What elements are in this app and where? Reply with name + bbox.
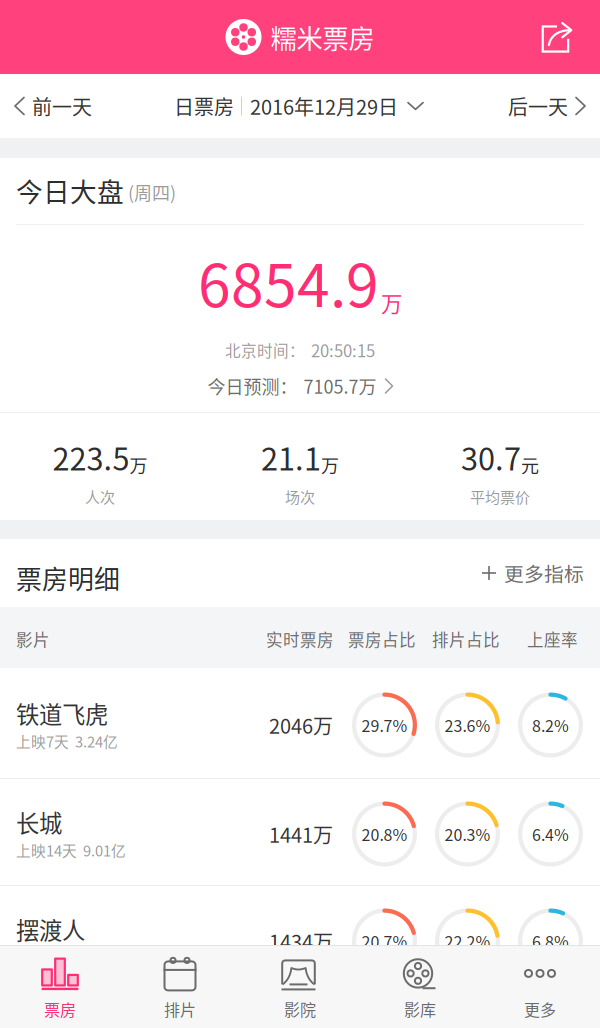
staticText: 排片	[164, 997, 196, 1021]
button[interactable]: 后一天	[450, 74, 600, 138]
staticText: 影片	[16, 627, 50, 651]
staticText: 排片占比	[432, 627, 500, 651]
button[interactable]: 票房	[0, 945, 120, 1028]
staticText: 2046万	[269, 710, 333, 739]
staticText: 票房明细	[16, 559, 120, 596]
staticText: 21.1	[261, 435, 321, 479]
staticText: 影院	[284, 997, 316, 1021]
staticText: 今日预测：	[207, 373, 297, 399]
staticText: 今日大盘	[16, 171, 124, 210]
staticText: 长城	[16, 805, 62, 839]
button[interactable]: 影库	[360, 945, 480, 1028]
staticText: 29.7%	[361, 713, 407, 737]
staticText: 20.7%	[361, 929, 407, 953]
staticText: 更多	[524, 997, 556, 1021]
button[interactable]: 前一天	[0, 74, 150, 138]
staticText: 影库	[404, 997, 436, 1021]
staticText: 万	[129, 452, 147, 478]
staticText: 6854.9	[198, 239, 379, 324]
staticText: 1434万	[269, 926, 333, 955]
staticText: 人次	[85, 485, 115, 507]
button[interactable]: 排片	[120, 945, 240, 1028]
staticText: 20.8%	[361, 822, 407, 846]
staticText: 2016年12月29日	[250, 91, 398, 120]
button[interactable]: 分享	[521, 0, 593, 74]
staticText: 6.4%	[532, 822, 569, 846]
staticText: 30.7	[461, 435, 521, 479]
staticText: 8.2%	[532, 713, 569, 737]
staticText: 7105.7万	[303, 373, 376, 399]
staticText: 铁道飞虎	[16, 696, 108, 730]
staticText: 万	[381, 287, 402, 318]
staticText: 22.2%	[444, 929, 490, 953]
staticText: 前一天	[32, 91, 92, 120]
staticText: 23.6%	[444, 713, 490, 737]
staticText: 平均票价	[470, 485, 530, 507]
staticText: (周四)	[128, 179, 176, 205]
staticText: 万	[321, 452, 339, 478]
button[interactable]: 日票房	[174, 74, 423, 138]
button[interactable]: 影院	[240, 945, 360, 1028]
staticText: 更多指标	[504, 559, 584, 587]
staticText: 20.3%	[444, 822, 490, 846]
staticText: 场次	[285, 485, 315, 507]
button[interactable]: 铁道飞虎	[0, 668, 600, 779]
staticText: 日票房	[174, 91, 234, 120]
staticText: 上座率	[527, 627, 578, 651]
staticText: 摆渡人	[16, 912, 85, 946]
staticText: 后一天	[508, 91, 568, 120]
staticText: 票房占比	[348, 627, 416, 651]
button[interactable]: 长城	[0, 779, 600, 886]
staticText: 上映14天 9.01亿	[16, 839, 126, 861]
button[interactable]: 今日预测：	[0, 368, 600, 404]
button[interactable]: 更多指标	[482, 539, 584, 607]
staticText: 糯米票房	[270, 18, 374, 56]
staticText: 6.8%	[532, 929, 569, 953]
staticText: 1441万	[269, 819, 333, 848]
button[interactable]: 更多	[480, 945, 600, 1028]
staticText: 上映7天 3.24亿	[16, 730, 118, 752]
staticText: 上映8天 3.72亿	[16, 946, 118, 968]
staticText: 223.5	[52, 435, 129, 479]
staticText: 20:50:15	[311, 338, 375, 362]
button[interactable]: 摆渡人	[0, 886, 600, 993]
staticText: 票房	[44, 997, 76, 1021]
staticText: 元	[521, 452, 539, 478]
staticText: 实时票房	[266, 627, 334, 651]
staticText: 北京时间：	[225, 339, 305, 361]
